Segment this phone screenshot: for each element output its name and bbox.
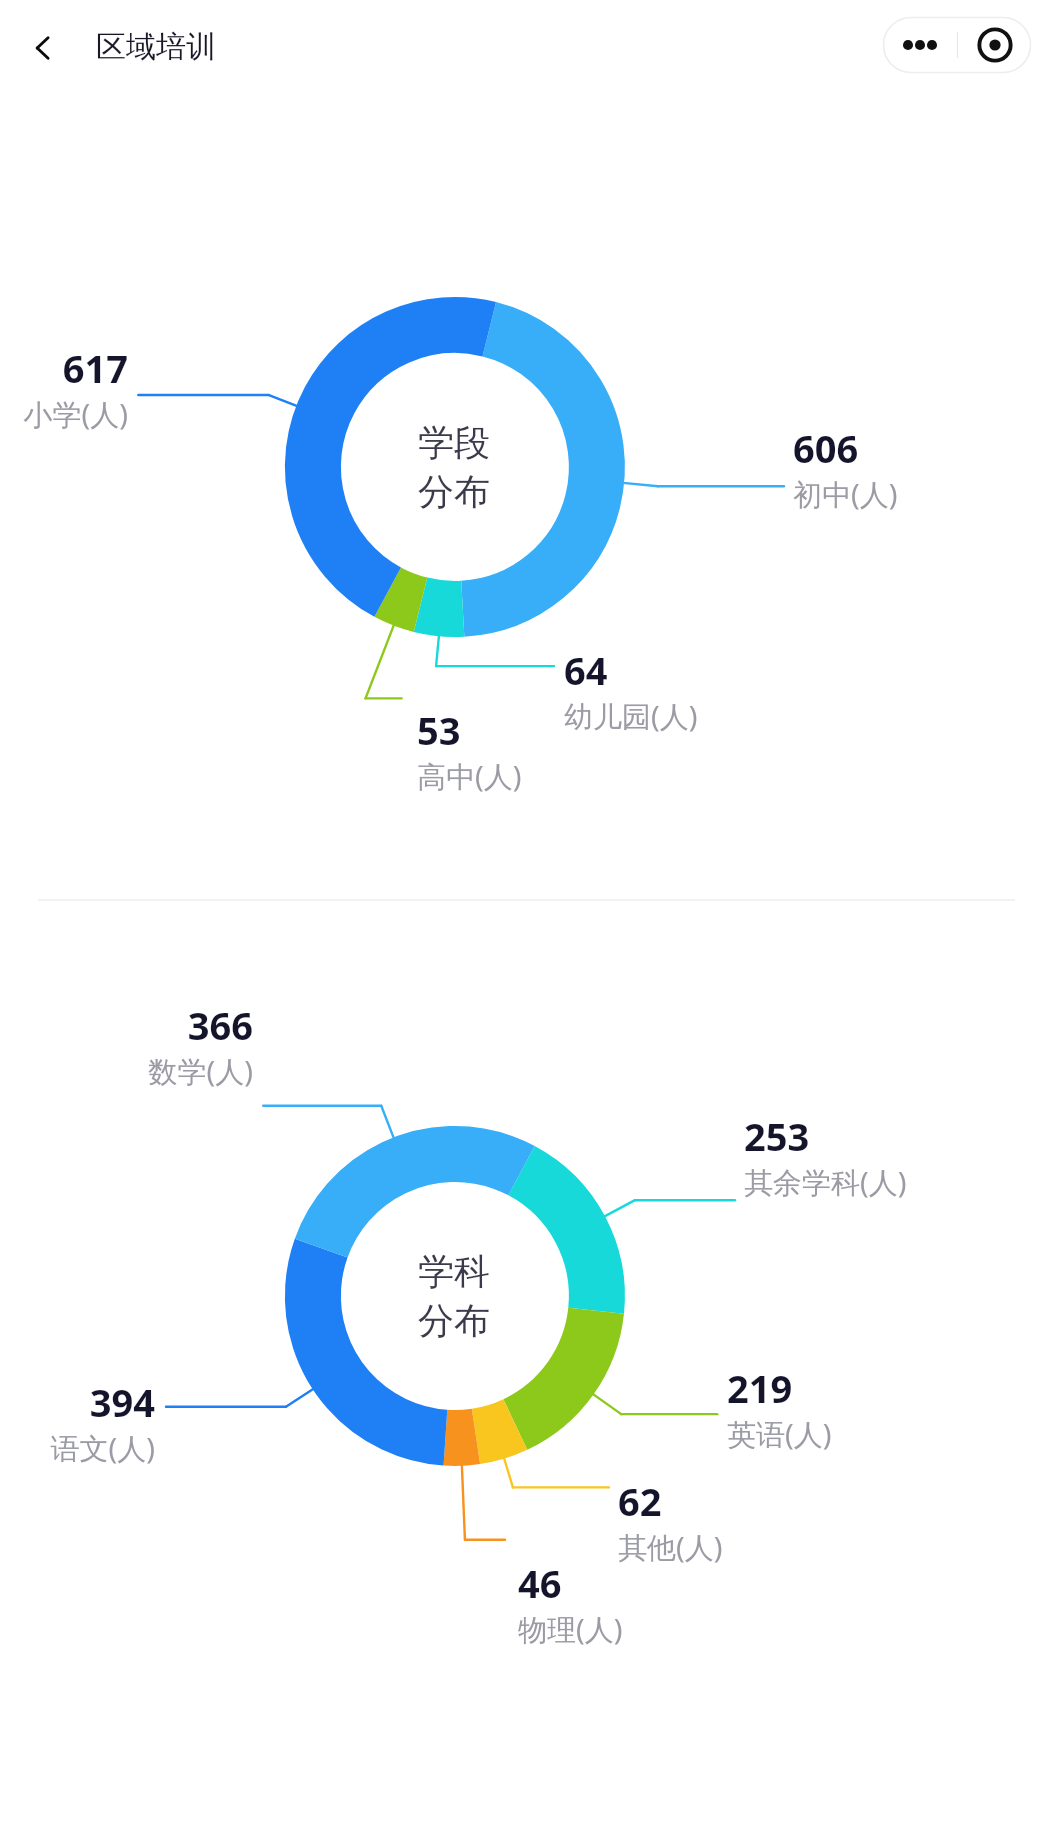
- staticText: 区域培训: [96, 28, 216, 66]
- button[interactable]: 617: [23, 342, 128, 434]
- staticText: 高中(人): [417, 756, 522, 796]
- staticText: 学科: [418, 1249, 490, 1294]
- staticText: 617: [62, 342, 128, 394]
- staticText: 53: [417, 704, 461, 756]
- staticText: 学段: [418, 420, 490, 465]
- staticText: 219: [727, 1362, 793, 1414]
- button[interactable]: 219: [727, 1362, 832, 1454]
- button[interactable]: 返回: [14, 18, 74, 78]
- staticText: 英语(人): [727, 1414, 832, 1454]
- staticText: 46: [518, 1557, 562, 1609]
- staticText: 分布: [418, 1298, 490, 1343]
- button[interactable]: 253: [744, 1110, 907, 1202]
- staticText: 数学(人): [148, 1051, 253, 1091]
- staticText: 语文(人): [50, 1428, 155, 1468]
- staticText: 606: [793, 422, 859, 474]
- staticText: 物理(人): [518, 1609, 623, 1649]
- staticText: 64: [564, 644, 608, 696]
- staticText: 366: [187, 999, 253, 1051]
- staticText: 253: [744, 1110, 810, 1162]
- button[interactable]: 更多: [883, 17, 957, 73]
- staticText: 其他(人): [618, 1527, 723, 1567]
- button[interactable]: 53: [417, 704, 522, 796]
- staticText: 初中(人): [793, 474, 898, 514]
- button[interactable]: 366: [148, 999, 253, 1091]
- staticText: 小学(人): [23, 394, 128, 434]
- button[interactable]: 46: [518, 1557, 623, 1649]
- staticText: 幼儿园(人): [564, 696, 698, 736]
- staticText: 分布: [418, 469, 490, 514]
- button[interactable]: 关闭: [958, 17, 1031, 73]
- button[interactable]: 62: [618, 1475, 723, 1567]
- staticText: 62: [618, 1475, 662, 1527]
- staticText: 394: [89, 1376, 155, 1428]
- button[interactable]: 64: [564, 644, 698, 736]
- button[interactable]: 394: [50, 1376, 155, 1468]
- staticText: 其余学科(人): [744, 1162, 907, 1202]
- button[interactable]: 606: [793, 422, 898, 514]
